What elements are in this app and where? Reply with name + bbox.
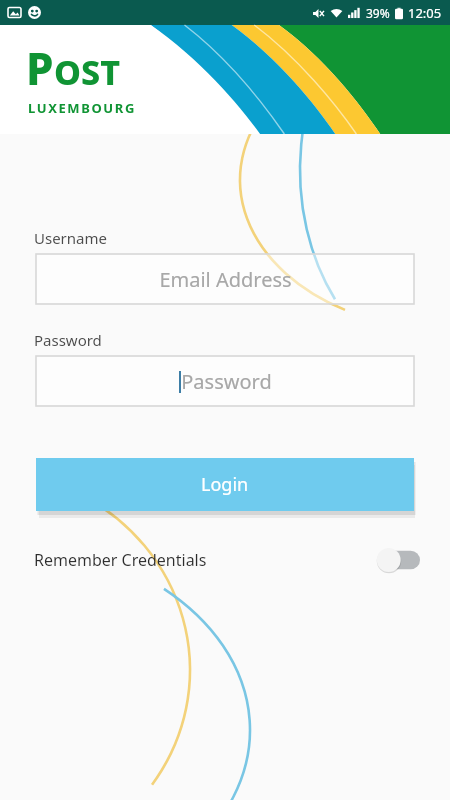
staticText: LUXEMBOURG xyxy=(28,99,136,117)
staticText: OST xyxy=(54,49,120,95)
button[interactable]: Email Address xyxy=(36,254,414,304)
staticText: 39% xyxy=(366,5,390,21)
staticText: Remember Credentials xyxy=(34,549,207,571)
staticText: Password xyxy=(181,368,272,395)
staticText: Login xyxy=(201,472,249,497)
button[interactable]: Login xyxy=(36,458,414,511)
staticText: Password xyxy=(34,330,102,350)
staticText: 12:05 xyxy=(408,4,442,22)
staticText: P xyxy=(26,38,54,98)
button[interactable]: Remember Credentials xyxy=(34,537,420,583)
staticText: Email Address xyxy=(159,266,292,293)
staticText: Username xyxy=(34,228,107,248)
button[interactable]: Password xyxy=(36,356,414,406)
other: Remember Credentials toggle xyxy=(376,547,420,573)
